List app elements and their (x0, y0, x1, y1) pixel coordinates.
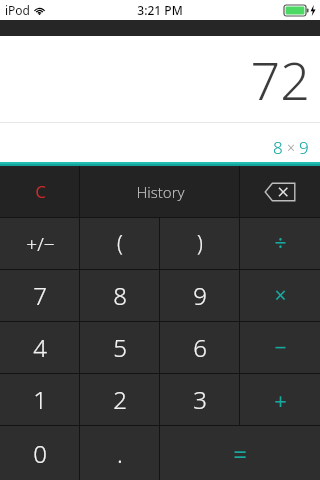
staticText: ÷ (274, 229, 287, 258)
button[interactable]: History (80, 166, 240, 217)
button[interactable]: C (0, 166, 80, 217)
staticText: − (274, 333, 287, 362)
button[interactable]: 6 (160, 322, 240, 373)
button[interactable]: 7 (0, 270, 80, 321)
staticText: ) (197, 229, 203, 258)
staticText: 6 (193, 331, 207, 364)
button[interactable]: + (240, 374, 320, 425)
button[interactable]: Backspace (240, 166, 320, 217)
button[interactable]: 9 (160, 270, 240, 321)
staticText: +/− (26, 231, 55, 257)
button[interactable]: − (240, 322, 320, 373)
staticText: × (287, 138, 295, 157)
staticText: iPod (5, 2, 30, 18)
button[interactable]: ) (160, 218, 240, 269)
button[interactable]: × (240, 270, 320, 321)
staticText: C (35, 180, 46, 203)
staticText: × (274, 281, 287, 310)
button[interactable]: 3 (160, 374, 240, 425)
button[interactable]: 5 (80, 322, 160, 373)
staticText: History (136, 182, 185, 202)
staticText: ( (117, 229, 123, 258)
staticText: 3 (193, 383, 207, 416)
staticText: 9 (299, 136, 309, 159)
button[interactable]: ( (80, 218, 160, 269)
button[interactable]: 4 (0, 322, 80, 373)
staticText: 0 (33, 437, 47, 470)
button[interactable]: 8 (80, 270, 160, 321)
staticText: 72 (250, 44, 310, 115)
button[interactable]: = (160, 426, 320, 480)
button[interactable]: 0 (0, 426, 80, 480)
staticText: 9 (193, 279, 207, 312)
staticText: 7 (33, 279, 47, 312)
button[interactable]: 2 (80, 374, 160, 425)
staticText: 2 (113, 383, 127, 416)
staticText: . (117, 437, 123, 470)
button[interactable]: . (80, 426, 160, 480)
staticText: 5 (113, 331, 127, 364)
staticText: 1 (33, 383, 47, 416)
button[interactable]: 1 (0, 374, 80, 425)
staticText: 4 (33, 331, 47, 364)
staticText: + (274, 385, 287, 415)
button[interactable]: +/− (0, 218, 80, 269)
button[interactable]: ÷ (240, 218, 320, 269)
staticText: 8 (113, 279, 127, 312)
staticText: = (233, 437, 247, 470)
staticText: 8 (273, 136, 283, 159)
staticText: 3:21 PM (137, 2, 183, 18)
